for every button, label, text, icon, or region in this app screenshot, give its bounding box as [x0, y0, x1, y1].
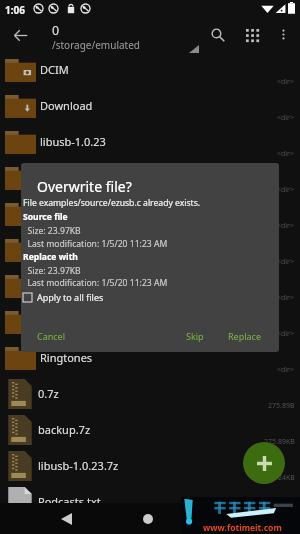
staticText: <dir>	[277, 257, 295, 267]
button[interactable]: libusb-1.0.23.7z	[0, 448, 300, 484]
button[interactable]: Movies	[0, 160, 300, 196]
staticText: <dir>	[277, 221, 295, 231]
staticText: 275.89KB	[264, 437, 295, 447]
button[interactable]: Pictures	[0, 268, 300, 304]
button[interactable]: Recents	[216, 505, 244, 533]
button[interactable]: Music	[0, 196, 300, 232]
button[interactable]: Download	[0, 88, 300, 124]
staticText: <dir>	[277, 329, 295, 339]
button[interactable]: More options	[270, 21, 296, 47]
button[interactable]: Add	[243, 442, 285, 484]
staticText: Podcasts.txt	[38, 494, 101, 509]
button[interactable]: libusb-1.0.23	[0, 124, 300, 160]
staticText: Apply to all files	[37, 291, 104, 303]
staticText: <dir>	[277, 113, 295, 123]
staticText: backup.7z	[38, 422, 91, 437]
button[interactable]: Skip	[182, 326, 208, 346]
staticText: <dir>	[277, 365, 295, 375]
staticText: Skip	[186, 330, 204, 342]
button[interactable]: DCIM	[0, 52, 300, 88]
staticText: libusb-1.0.23.7z	[38, 458, 119, 473]
staticText: File examples/source/ezusb.c already exi…	[23, 197, 201, 209]
staticText: Music	[40, 206, 71, 221]
button[interactable]: Search	[204, 21, 232, 49]
staticText: Overwrite file?	[37, 177, 132, 196]
staticText: Notifications	[40, 242, 106, 257]
staticText: 0	[52, 22, 60, 39]
staticText: Ringtones	[40, 350, 93, 365]
button[interactable]: Notifications	[0, 232, 300, 268]
button[interactable]: Replace	[224, 326, 265, 346]
button[interactable]: Ringtones	[0, 340, 300, 376]
staticText: Replace	[228, 330, 261, 342]
staticText: Download	[40, 98, 93, 113]
staticText: 0.7z	[38, 386, 59, 401]
staticText: Replace with	[23, 251, 78, 263]
staticText: 24KB	[278, 473, 295, 483]
staticText: Movies	[40, 170, 77, 185]
staticText: DCIM	[40, 62, 69, 77]
staticText: <dir>	[277, 185, 295, 195]
button[interactable]: Podcasts.txt	[0, 484, 300, 520]
button[interactable]: Cancel	[33, 326, 70, 346]
staticText: Pictures	[40, 278, 82, 293]
button[interactable]: 0.7z	[0, 376, 300, 412]
staticText: <dir>	[277, 149, 295, 159]
button[interactable]: backup.7z	[0, 412, 300, 448]
staticText: Last modification: 1/5/20 11:23 AM	[23, 277, 168, 289]
button[interactable]: Home	[134, 505, 162, 533]
staticText: /storage/emulated	[52, 38, 140, 52]
button[interactable]: Grid view	[238, 21, 266, 49]
staticText: <dir>	[277, 77, 295, 87]
staticText: libusb-1.0.23	[40, 134, 106, 149]
staticText: Size: 23.97KB	[23, 225, 81, 237]
staticText: 275.89B	[268, 401, 295, 411]
staticText: Size: 23.97KB	[23, 265, 81, 277]
staticText: Last modification: 1/5/20 11:23 AM	[23, 238, 168, 250]
staticText: Cancel	[37, 330, 66, 342]
button[interactable]: Podcasts	[0, 304, 300, 340]
button[interactable]: Back	[6, 21, 34, 49]
staticText: www.fotimeit.com	[203, 522, 282, 534]
button[interactable]: Apply to all files	[23, 291, 104, 303]
button[interactable]: Back	[52, 505, 80, 533]
staticText: Source file	[23, 211, 68, 223]
staticText: 1:06	[5, 3, 25, 17]
staticText: <dir>	[277, 293, 295, 303]
